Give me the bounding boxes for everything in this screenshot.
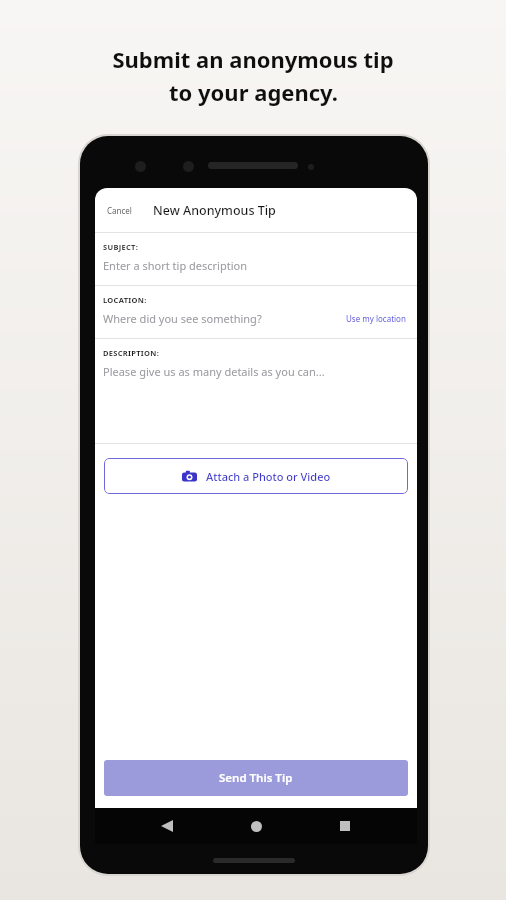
button[interactable]: Home bbox=[239, 809, 273, 843]
button[interactable]: Back bbox=[150, 809, 184, 843]
staticText: Use my location bbox=[346, 313, 406, 324]
button[interactable]: LOCATION: bbox=[95, 286, 417, 338]
staticText: DESCRIPTION: bbox=[103, 348, 160, 358]
button[interactable]: Use my location bbox=[343, 311, 409, 326]
button[interactable]: Recent apps bbox=[328, 809, 362, 843]
staticText: Cancel bbox=[107, 205, 132, 216]
button[interactable]: Cancel bbox=[99, 199, 140, 222]
staticText: Send This Tip bbox=[219, 770, 293, 786]
button[interactable]: DESCRIPTION: bbox=[95, 339, 417, 443]
staticText: Enter a short tip description bbox=[103, 258, 409, 273]
staticText: Please give us as many details as you ca… bbox=[103, 364, 409, 379]
button[interactable]: Send This Tip bbox=[104, 760, 408, 796]
staticText: SUBJECT: bbox=[103, 242, 139, 252]
staticText: Submit an anonymous tip bbox=[112, 44, 394, 74]
staticText: to your agency. bbox=[169, 77, 338, 107]
button[interactable]: Attach a Photo or Video bbox=[104, 458, 408, 494]
staticText: Where did you see something? bbox=[103, 311, 343, 326]
button[interactable]: SUBJECT: bbox=[95, 233, 417, 285]
staticText: Attach a Photo or Video bbox=[206, 469, 331, 484]
staticText: New Anonymous Tip bbox=[153, 202, 276, 219]
staticText: LOCATION: bbox=[103, 295, 147, 305]
